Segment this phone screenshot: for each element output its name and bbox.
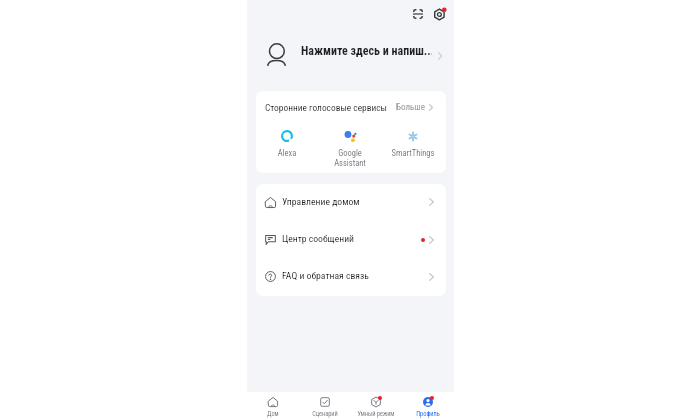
staticText: Сторонние голосовые сервисы (265, 102, 387, 113)
staticText: Умный режим (351, 410, 401, 417)
staticText: FAQ и обратная связь (282, 270, 369, 281)
staticText: Центр сообщений (282, 233, 354, 244)
staticText: SmartThings (384, 148, 442, 158)
button[interactable]: Дом (248, 394, 298, 420)
staticText: Alexa (258, 148, 316, 158)
button[interactable]: Профиль (403, 394, 453, 420)
button[interactable]: SmartThings (384, 130, 442, 158)
button[interactable]: Управление домом (256, 184, 446, 222)
button[interactable]: Умный режим (351, 394, 401, 420)
staticText: Нажмите здесь и напиш... (301, 44, 432, 58)
button[interactable]: Scan code (407, 3, 429, 25)
staticText: Сценарий (300, 410, 350, 417)
staticText: Профиль (403, 410, 453, 417)
button[interactable]: Больше (396, 102, 433, 113)
staticText: Управление домом (282, 196, 360, 207)
button[interactable]: FAQ и обратная связь (256, 259, 446, 296)
button[interactable]: Нажмите здесь и напиш... (247, 27, 454, 84)
button[interactable]: Alexa (258, 130, 316, 158)
staticText: Больше (396, 102, 425, 113)
staticText: Google Assistant (321, 148, 379, 168)
button[interactable]: Центр сообщений (256, 222, 446, 259)
staticText: Дом (248, 410, 298, 417)
button[interactable]: Add device (429, 3, 451, 25)
button[interactable]: Сценарий (300, 394, 350, 420)
button[interactable]: Google Assistant (321, 130, 379, 168)
